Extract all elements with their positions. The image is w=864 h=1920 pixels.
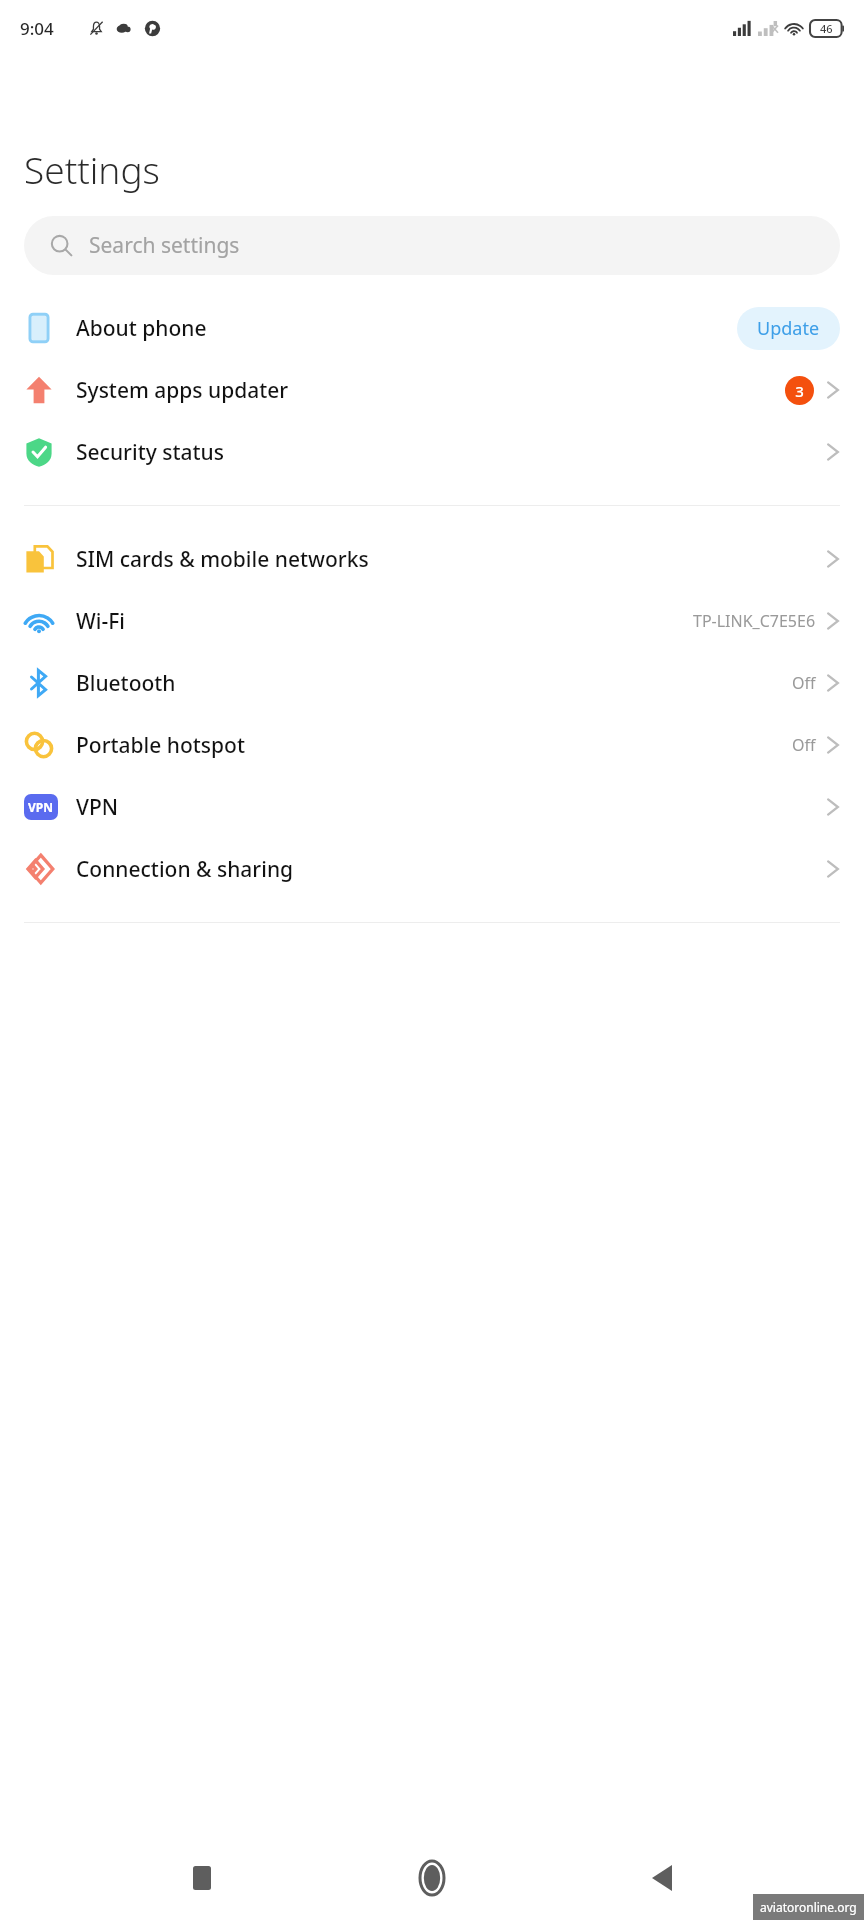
button[interactable]: VPN: [0, 776, 864, 838]
staticText: About phone: [76, 314, 207, 343]
staticText: SIM cards & mobile networks: [76, 545, 369, 574]
staticText: 9:04: [20, 17, 54, 40]
button[interactable]: Bluetooth: [0, 652, 864, 714]
staticText: VPN: [28, 799, 54, 815]
staticText: 3: [795, 381, 804, 401]
button[interactable]: Home: [404, 1850, 460, 1906]
button[interactable]: Search settings: [24, 216, 840, 275]
button[interactable]: Portable hotspot: [0, 714, 864, 776]
staticText: Off: [792, 734, 816, 756]
button[interactable]: Wi-Fi: [0, 590, 864, 652]
button[interactable]: SIM cards & mobile networks: [0, 528, 864, 590]
staticText: aviatoronline.org: [760, 1899, 857, 1915]
button[interactable]: Connection & sharing: [0, 838, 864, 900]
button[interactable]: Back: [634, 1850, 690, 1906]
staticText: Bluetooth: [76, 669, 176, 698]
staticText: Update: [757, 316, 820, 341]
button[interactable]: Recent apps: [174, 1850, 230, 1906]
button[interactable]: Update: [737, 307, 840, 350]
staticText: System apps updater: [76, 376, 289, 405]
staticText: Portable hotspot: [76, 731, 245, 760]
staticText: Connection & sharing: [76, 855, 294, 884]
staticText: 46: [820, 21, 833, 36]
staticText: Settings: [24, 144, 160, 194]
button[interactable]: About phone: [0, 297, 864, 359]
staticText: Security status: [76, 438, 224, 467]
staticText: Off: [792, 672, 816, 694]
button[interactable]: System apps updater: [0, 359, 864, 421]
button[interactable]: Security status: [0, 421, 864, 483]
staticText: VPN: [76, 793, 119, 822]
staticText: Wi-Fi: [76, 607, 125, 636]
staticText: TP-LINK_C7E5E6: [693, 610, 816, 632]
staticText: Search settings: [89, 231, 240, 260]
